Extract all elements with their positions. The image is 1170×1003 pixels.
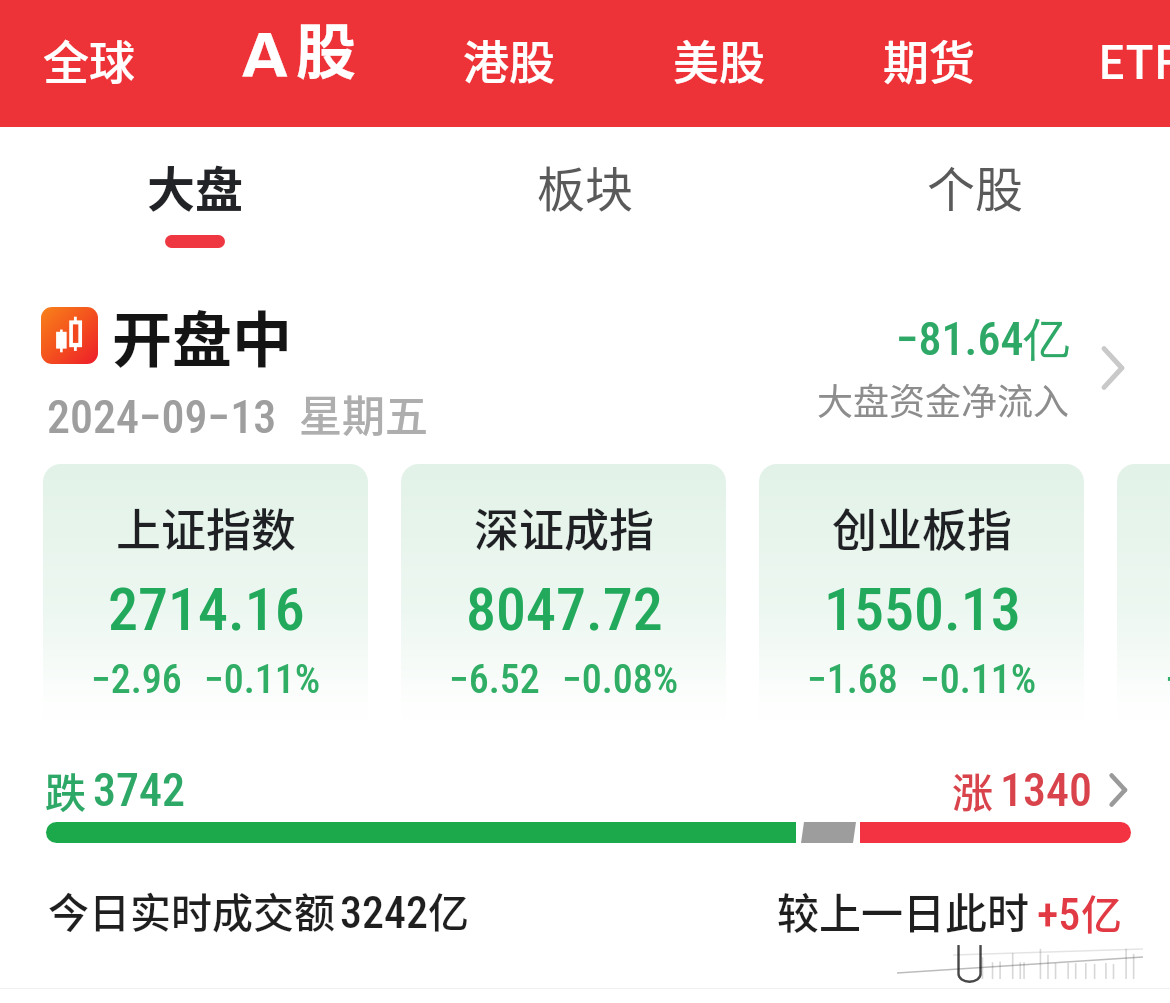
staticText: −1.68 — [807, 656, 898, 703]
staticText: 大盘 — [147, 151, 244, 221]
staticText: 亿 — [1081, 882, 1122, 941]
staticText: −0.11% — [920, 656, 1037, 703]
staticText: 美股 — [673, 26, 765, 93]
staticText: ETF — [1098, 26, 1170, 93]
staticText: A — [242, 22, 288, 91]
staticText: 大盘资金净流入 — [817, 373, 1070, 425]
staticText: 港股 — [463, 26, 555, 93]
staticText: 今日实时成交额 — [48, 880, 335, 939]
button[interactable]: 个股 — [780, 127, 1170, 262]
staticText: 较上一日此时 — [777, 880, 1030, 941]
button[interactable]: 美股 — [614, 0, 824, 127]
staticText: −0.11% — [204, 656, 321, 703]
staticText: −2.96 — [91, 656, 182, 703]
staticText: 3242 — [340, 887, 428, 939]
staticText: −1.21 — [1165, 656, 1170, 703]
button[interactable]: 科创50 — [1117, 464, 1170, 732]
staticText: 全球 — [43, 26, 135, 93]
button[interactable]: ETF — [1034, 0, 1170, 127]
button[interactable]: 跌 — [45, 760, 1146, 819]
staticText: 期货 — [883, 26, 975, 93]
staticText: 深证成指 — [474, 495, 655, 560]
button[interactable]: 港股 — [404, 0, 614, 127]
staticText: 股 — [296, 4, 356, 91]
staticText: 跌 — [45, 760, 86, 819]
button[interactable]: 大盘 — [0, 127, 390, 262]
staticText: 开盘中 — [112, 292, 292, 379]
staticText: 8047.72 — [466, 574, 663, 644]
staticText: 个股 — [927, 151, 1024, 221]
button[interactable]: 查看大盘资金净流入 — [1085, 340, 1141, 396]
staticText: 1340 — [1000, 763, 1092, 817]
staticText: −81.64亿 — [896, 311, 1070, 369]
staticText: 上证指数 — [116, 495, 297, 560]
staticText: +5 — [1037, 889, 1081, 941]
staticText: −0.08% — [562, 656, 679, 703]
staticText: 创业板指 — [832, 495, 1013, 560]
button[interactable]: 板块 — [390, 127, 780, 262]
staticText: 板块 — [537, 151, 634, 221]
button[interactable]: 深证成指 — [401, 464, 726, 732]
staticText: 3742 — [93, 763, 185, 817]
button[interactable]: 创业板指 — [759, 464, 1084, 732]
button[interactable]: 上证指数 — [43, 464, 368, 732]
staticText: 2024−09−13 — [47, 390, 277, 444]
staticText: 亿 — [428, 880, 469, 939]
staticText: −6.52 — [449, 656, 540, 703]
staticText: 涨 — [952, 760, 993, 819]
button[interactable]: A — [194, 0, 404, 127]
staticText: 2714.16 — [108, 574, 305, 644]
button[interactable]: 全球 — [0, 0, 194, 127]
staticText: 星期五 — [299, 382, 428, 444]
staticText: 1550.13 — [824, 574, 1021, 644]
button[interactable]: 期货 — [824, 0, 1034, 127]
